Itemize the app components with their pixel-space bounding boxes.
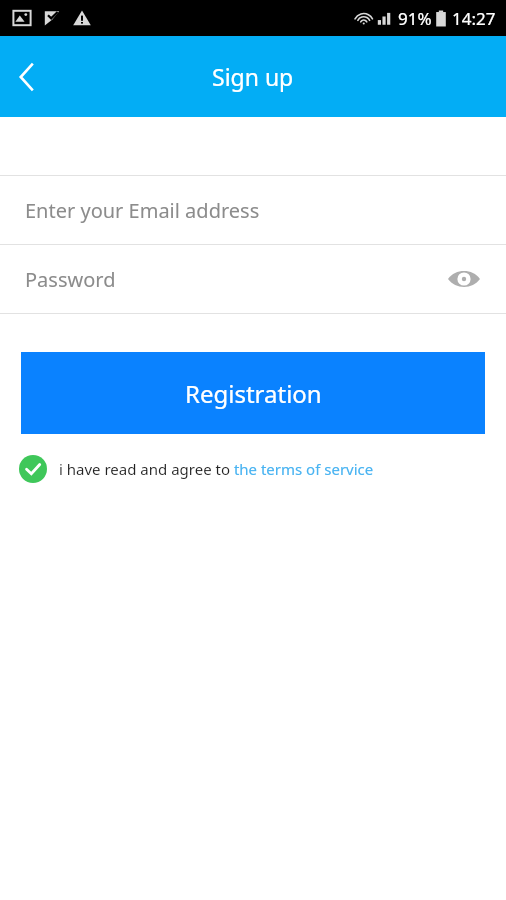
button[interactable]: Registration (21, 352, 485, 434)
staticText: Registration (185, 377, 322, 410)
button[interactable]: i have read and agree to the terms of se… (19, 452, 506, 486)
staticText: Sign up (212, 61, 294, 92)
button[interactable]: Password (0, 245, 506, 313)
button[interactable]: Back (0, 51, 52, 103)
staticText: i have read and agree to the terms of se… (59, 459, 374, 479)
button[interactable]: Enter your Email address (0, 176, 506, 244)
staticText: Password (25, 266, 116, 293)
button[interactable]: Show password (444, 259, 484, 299)
staticText: Enter your Email address (25, 197, 260, 224)
staticText: 14:27 (452, 7, 496, 30)
staticText: 91% (398, 7, 432, 30)
